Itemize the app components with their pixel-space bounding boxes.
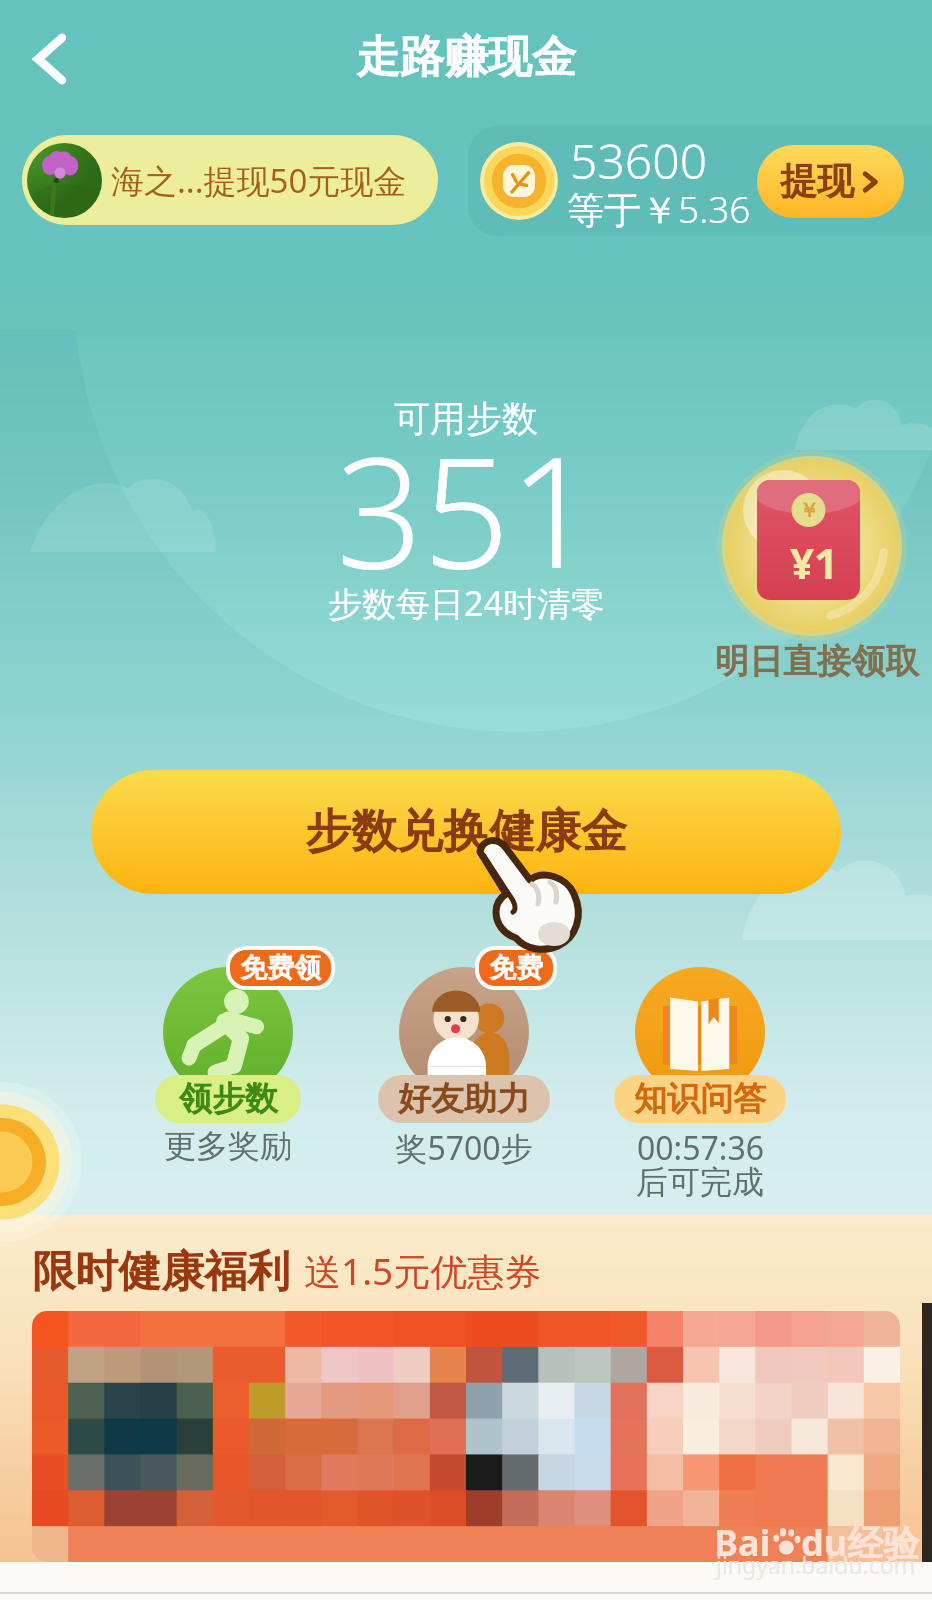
staticText: 送1.5元优惠券 xyxy=(304,1245,542,1296)
staticText: 提现 xyxy=(780,158,854,205)
staticText: 351 xyxy=(336,406,597,613)
button[interactable]: ￥ xyxy=(757,480,860,600)
staticText: 53600 xyxy=(570,128,708,193)
button[interactable]: 提现 xyxy=(757,145,904,218)
button[interactable]: 海之...提现50元现金 xyxy=(22,135,438,225)
staticText: 海之...提现50元现金 xyxy=(111,158,407,203)
staticText: 免费领 xyxy=(240,951,321,985)
staticText: 奖5700步 xyxy=(395,1126,533,1170)
staticText: 明日直接领取 xyxy=(715,640,919,683)
staticText: Bai xyxy=(714,1518,771,1567)
staticText: 知识问答 xyxy=(634,1078,766,1120)
staticText: 00:57:36 xyxy=(637,1126,764,1170)
staticText: 免费 xyxy=(489,951,543,985)
button[interactable] xyxy=(163,967,293,1097)
button[interactable] xyxy=(32,1311,900,1562)
staticText: 限时健康福利 xyxy=(32,1245,290,1299)
staticText: 好友助力 xyxy=(398,1078,530,1120)
staticText: du经验 xyxy=(801,1518,920,1567)
staticText: 后可完成 xyxy=(636,1162,764,1202)
staticText: 领步数 xyxy=(179,1078,278,1120)
button[interactable]: Back xyxy=(12,21,88,97)
staticText: 走路赚现金 xyxy=(356,30,576,85)
staticText: 更多奖励 xyxy=(164,1126,292,1166)
button[interactable] xyxy=(399,967,529,1097)
staticText: 可用步数 xyxy=(394,396,538,441)
staticText: 步数每日24时清零 xyxy=(328,580,605,626)
staticText: 等于￥5.36 xyxy=(567,183,751,234)
button[interactable] xyxy=(635,967,765,1097)
staticText: ￥ xyxy=(799,498,819,523)
staticText: ¥1 xyxy=(790,534,839,591)
staticText: jingyan.baidu.com xyxy=(716,1549,916,1580)
button[interactable]: 步数兑换健康金 xyxy=(91,770,841,894)
staticText: 步数兑换健康金 xyxy=(305,803,627,861)
